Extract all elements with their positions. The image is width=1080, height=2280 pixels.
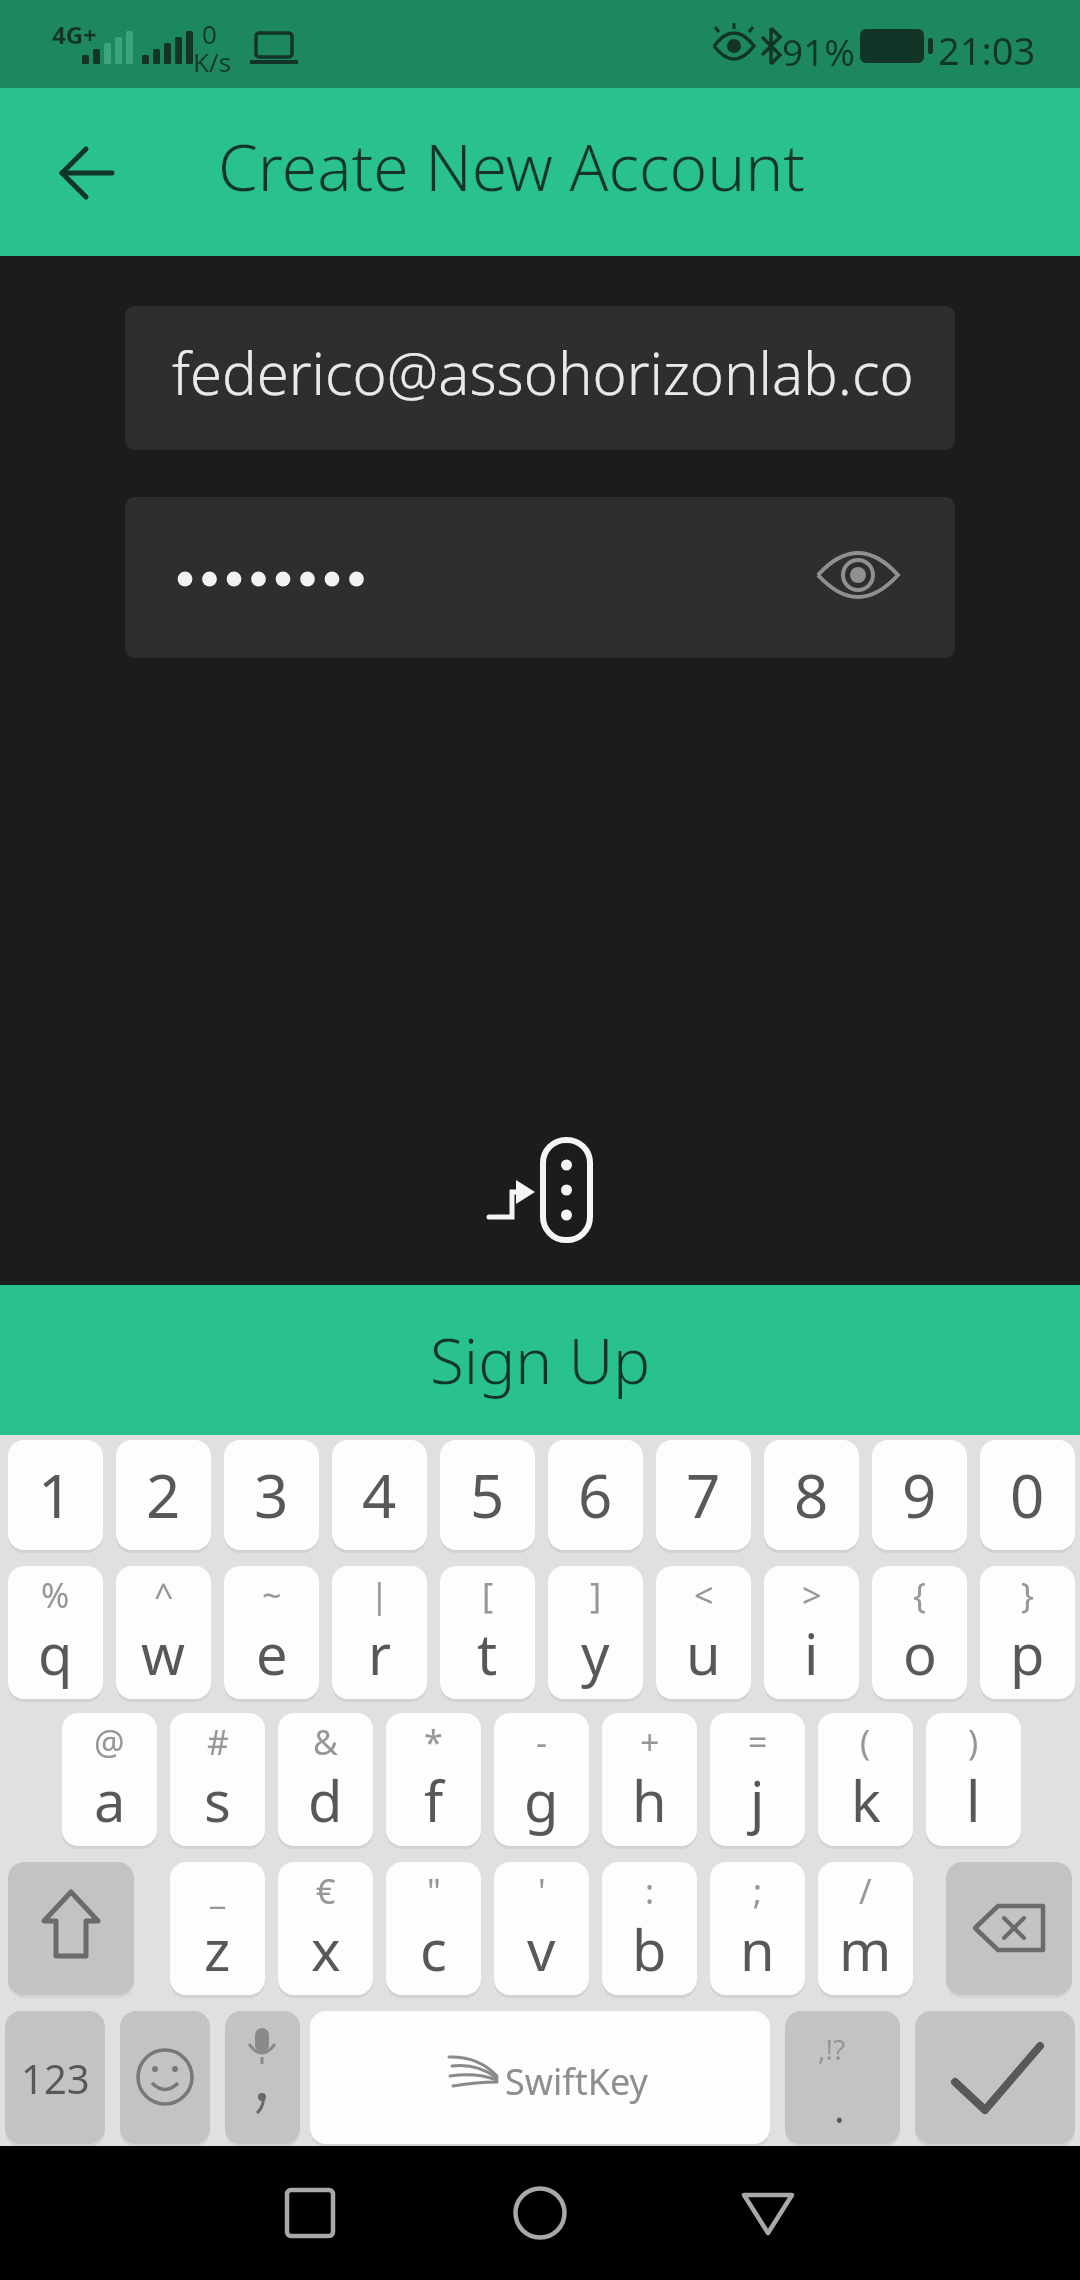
button[interactable]: 6 <box>548 1440 643 1550</box>
staticText: t <box>477 1615 498 1691</box>
button[interactable]: > <box>764 1566 859 1699</box>
staticText: e <box>256 1615 288 1691</box>
button[interactable] <box>8 1862 134 1995</box>
button[interactable] <box>120 2011 210 2144</box>
staticText: 123 <box>21 2051 90 2105</box>
staticText: y <box>581 1615 610 1691</box>
button[interactable]: 9 <box>872 1440 967 1550</box>
staticText: | <box>370 1572 389 1618</box>
button[interactable]: ] <box>548 1566 643 1699</box>
staticText: w <box>141 1615 186 1691</box>
button[interactable]: < <box>656 1566 751 1699</box>
button[interactable] <box>785 2011 900 2144</box>
button[interactable]: % <box>8 1566 103 1699</box>
staticText: 1 <box>38 1454 73 1536</box>
button[interactable]: 4 <box>332 1440 427 1550</box>
button[interactable]: _ <box>170 1862 265 1995</box>
staticText: . <box>834 2080 845 2134</box>
staticText: v <box>527 1911 556 1987</box>
button[interactable]: * <box>386 1713 481 1846</box>
button[interactable]: + <box>602 1713 697 1846</box>
button[interactable]: 3 <box>224 1440 319 1550</box>
button[interactable]: : <box>602 1862 697 1995</box>
button[interactable]: ^ <box>116 1566 211 1699</box>
staticText: n <box>740 1911 775 1987</box>
button[interactable]: [ <box>440 1566 535 1699</box>
button[interactable] <box>225 2011 300 2144</box>
staticText: i <box>804 1615 819 1691</box>
staticText: [ <box>482 1572 494 1618</box>
staticText: ] <box>590 1572 602 1618</box>
button[interactable]: 7 <box>656 1440 751 1550</box>
button[interactable] <box>915 2011 1075 2144</box>
staticText: } <box>1021 1572 1034 1618</box>
staticText: + <box>640 1719 660 1765</box>
staticText: 4 <box>362 1454 397 1536</box>
button[interactable]: ) <box>926 1713 1021 1846</box>
staticText: h <box>632 1762 667 1838</box>
button[interactable]: 5 <box>440 1440 535 1550</box>
button[interactable] <box>125 497 955 658</box>
button[interactable] <box>270 2180 350 2250</box>
staticText: € <box>316 1868 336 1914</box>
button[interactable]: # <box>170 1713 265 1846</box>
button[interactable] <box>500 2180 580 2250</box>
staticText: = <box>748 1719 768 1765</box>
button[interactable]: € <box>278 1862 373 1995</box>
button[interactable]: ( <box>818 1713 913 1846</box>
button[interactable]: @ <box>62 1713 157 1846</box>
staticText: _ <box>210 1868 226 1914</box>
staticText: Create New Account <box>218 123 806 210</box>
staticText: 21:03 <box>938 24 1036 76</box>
button[interactable]: 0 <box>980 1440 1075 1550</box>
button[interactable]: - <box>494 1713 589 1846</box>
staticText: 0 <box>202 16 217 51</box>
staticText: c <box>420 1911 447 1987</box>
staticText: federico@assohorizonlab.co <box>172 333 914 412</box>
staticText: x <box>311 1911 341 1987</box>
staticText: Sign Up <box>430 1318 651 1402</box>
staticText: / <box>859 1868 872 1914</box>
button[interactable]: = <box>710 1713 805 1846</box>
button[interactable]: / <box>818 1862 913 1995</box>
staticText: 91% <box>782 26 856 76</box>
staticText: ) <box>968 1719 979 1765</box>
button[interactable] <box>40 140 130 210</box>
staticText: s <box>204 1762 231 1838</box>
button[interactable]: 8 <box>764 1440 859 1550</box>
staticText: @ <box>94 1719 125 1765</box>
staticText: m <box>839 1911 892 1987</box>
button[interactable] <box>730 2180 810 2250</box>
button[interactable]: & <box>278 1713 373 1846</box>
staticText: ~ <box>262 1572 282 1618</box>
staticText: d <box>308 1762 343 1838</box>
staticText: z <box>204 1911 231 1987</box>
staticText: q <box>38 1615 73 1691</box>
staticText: j <box>750 1762 765 1838</box>
button[interactable]: 123 <box>5 2011 105 2144</box>
button[interactable]: Sign Up <box>0 1285 1080 1435</box>
button[interactable]: ; <box>710 1862 805 1995</box>
staticText: - <box>536 1719 547 1765</box>
button[interactable] <box>946 1862 1072 1995</box>
button[interactable]: | <box>332 1566 427 1699</box>
staticText: 7 <box>686 1454 721 1536</box>
staticText: > <box>802 1572 822 1618</box>
button[interactable]: ' <box>494 1862 589 1995</box>
button[interactable] <box>125 306 955 450</box>
staticText: o <box>903 1615 937 1691</box>
button[interactable]: 1 <box>8 1440 103 1550</box>
staticText: k <box>851 1762 881 1838</box>
staticText: ^ <box>154 1572 174 1618</box>
staticText: g <box>524 1762 559 1838</box>
staticText: SwiftKey <box>505 2057 648 2106</box>
button[interactable]: { <box>872 1566 967 1699</box>
button[interactable] <box>310 2011 770 2144</box>
button[interactable]: " <box>386 1862 481 1995</box>
button[interactable]: } <box>980 1566 1075 1699</box>
staticText: l <box>966 1762 981 1838</box>
staticText: f <box>424 1762 444 1838</box>
button[interactable]: ~ <box>224 1566 319 1699</box>
staticText: " <box>427 1868 441 1914</box>
button[interactable]: 2 <box>116 1440 211 1550</box>
